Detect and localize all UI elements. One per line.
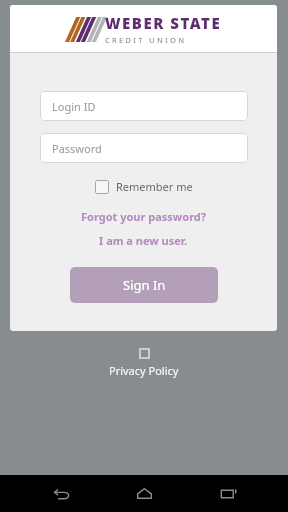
button[interactable]: Sign In — [70, 267, 218, 303]
button[interactable]: Forgot your password? — [75, 207, 213, 226]
button[interactable]: Privacy Policy — [109, 348, 179, 378]
button[interactable]: I am a new user. — [93, 231, 194, 250]
button[interactable]: Login ID — [40, 91, 248, 121]
button[interactable]: Back — [38, 475, 84, 512]
staticText: WEBER STATE — [105, 13, 222, 33]
staticText: Login ID — [52, 99, 96, 114]
button[interactable]: Remember me — [91, 176, 197, 197]
staticText: Privacy Policy — [109, 363, 179, 378]
staticText: Sign In — [123, 276, 166, 294]
button[interactable]: Recent apps — [205, 475, 251, 512]
button[interactable]: Home — [121, 475, 167, 512]
staticText: Password — [52, 141, 102, 156]
button[interactable]: Password — [40, 133, 248, 163]
staticText: CREDIT UNION — [105, 35, 187, 45]
staticText: Remember me — [116, 179, 193, 194]
